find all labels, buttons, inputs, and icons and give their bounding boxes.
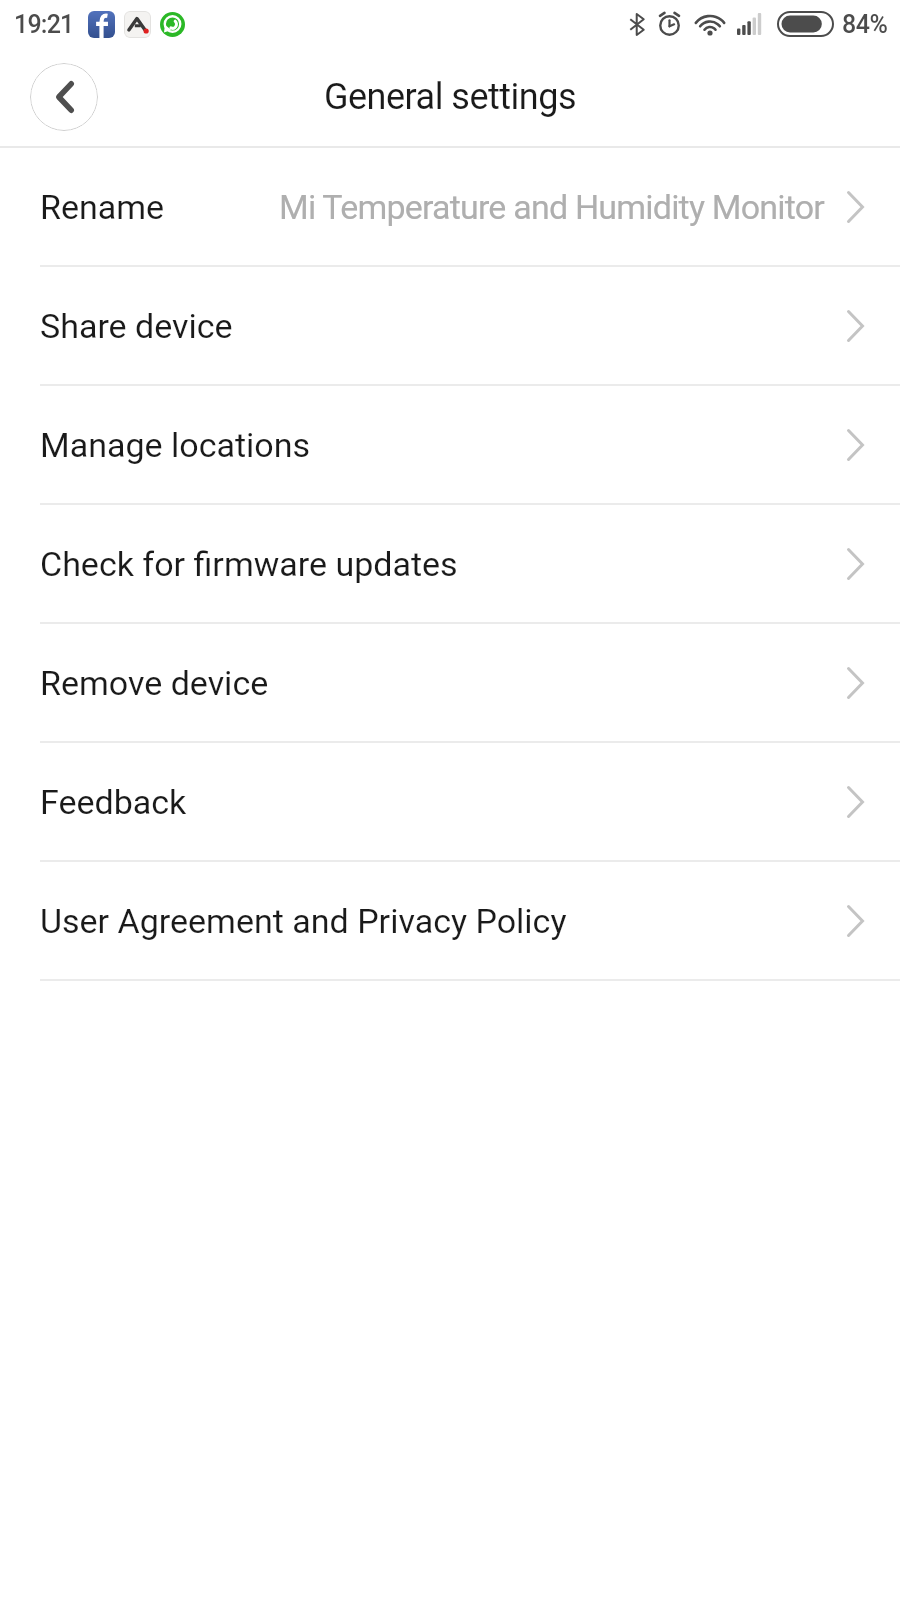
button[interactable]: Check for firmware updates: [0, 505, 900, 624]
staticText: Share device: [40, 306, 233, 346]
button[interactable]: Share device: [0, 267, 900, 386]
button[interactable]: [30, 63, 98, 131]
staticText: Feedback: [40, 782, 187, 822]
staticText: Mi Temperature and Humidity Monitor: [279, 187, 825, 227]
staticText: User Agreement and Privacy Policy: [40, 901, 567, 941]
button[interactable]: Rename: [0, 148, 900, 267]
staticText: Rename: [40, 187, 165, 227]
button[interactable]: Feedback: [0, 743, 900, 862]
staticText: Remove device: [40, 663, 269, 703]
staticText: General settings: [324, 76, 576, 118]
button[interactable]: Remove device: [0, 624, 900, 743]
staticText: Check for firmware updates: [40, 544, 458, 584]
button[interactable]: User Agreement and Privacy Policy: [0, 862, 900, 981]
staticText: 19:21: [14, 10, 74, 39]
button[interactable]: Manage locations: [0, 386, 900, 505]
staticText: 84%: [842, 10, 888, 39]
staticText: Manage locations: [40, 425, 311, 465]
